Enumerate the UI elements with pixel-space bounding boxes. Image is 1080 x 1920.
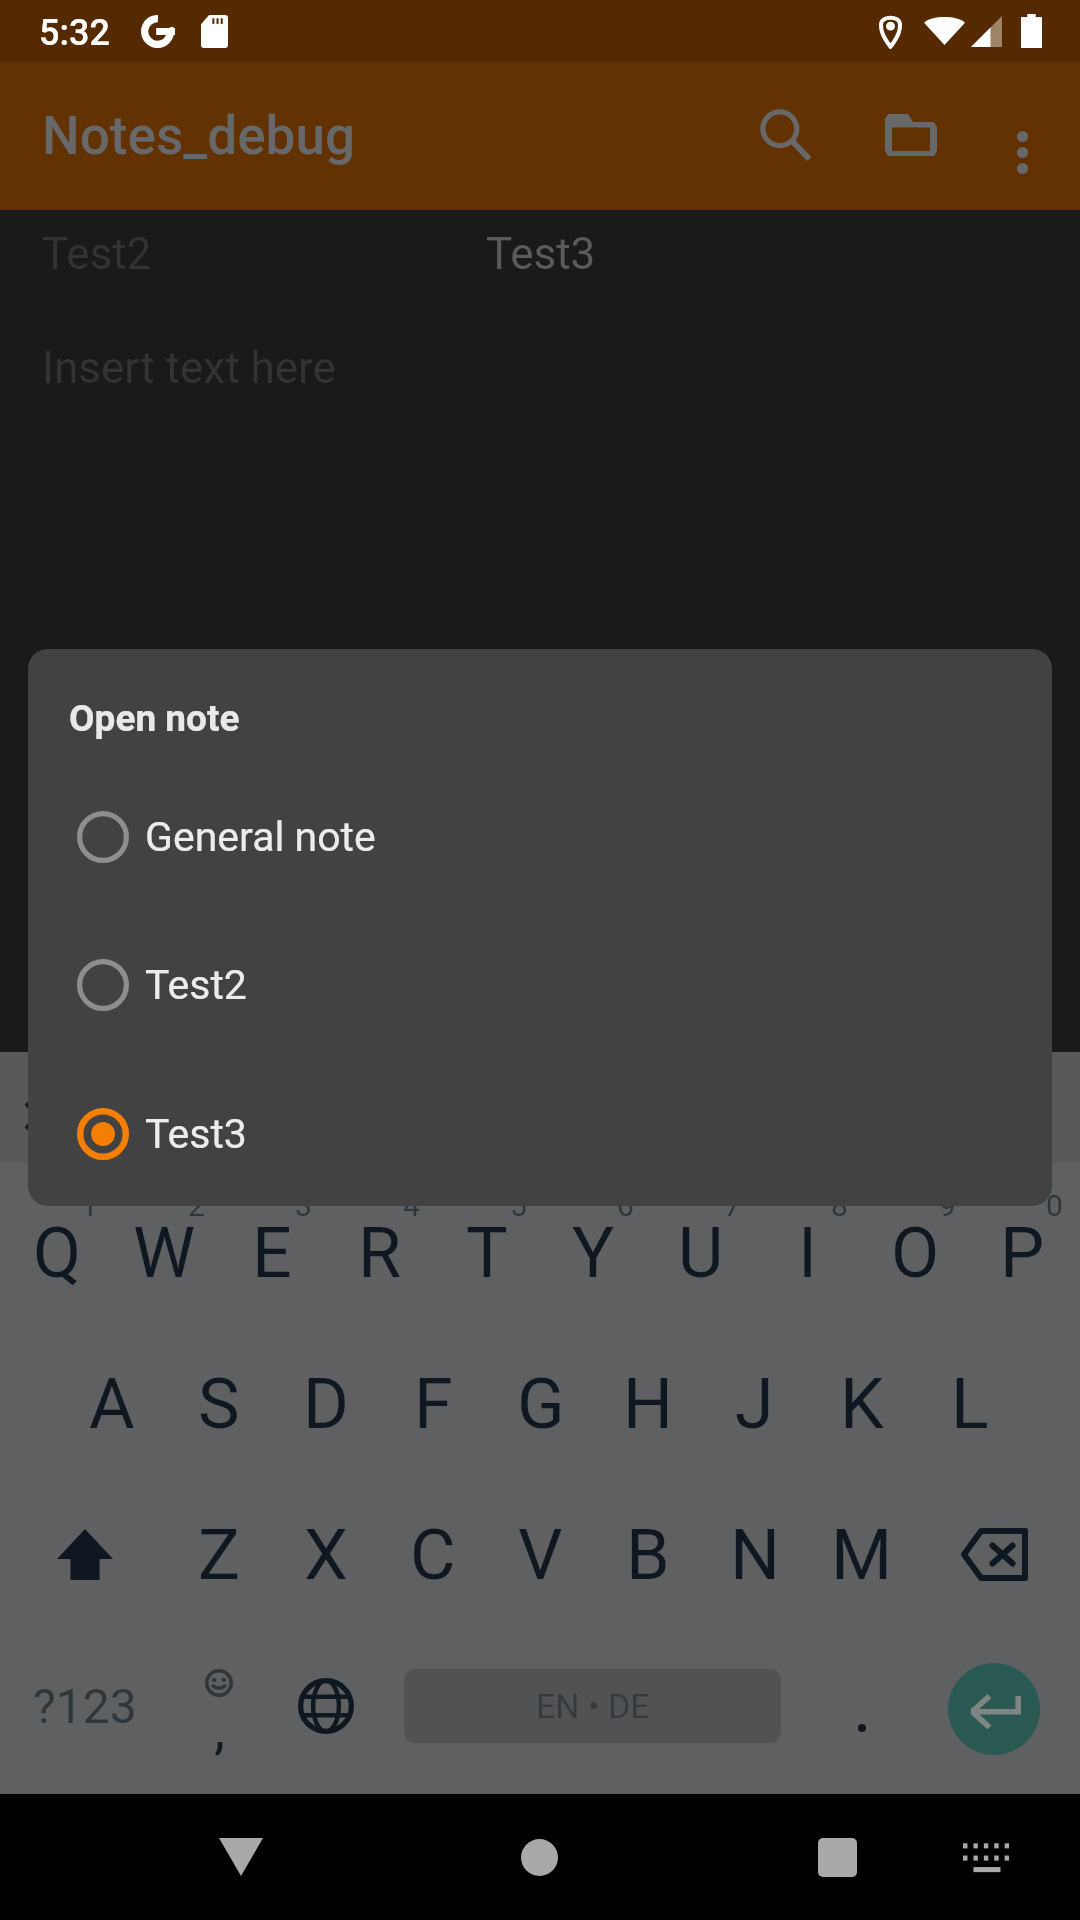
button[interactable]: General note: [28, 763, 1052, 911]
button[interactable]: 0: [969, 1177, 1076, 1328]
button[interactable]: 7: [647, 1177, 754, 1328]
staticText: S: [198, 1363, 240, 1445]
button[interactable]: 4: [326, 1177, 433, 1328]
button[interactable]: [948, 1663, 1040, 1755]
staticText: A: [89, 1363, 135, 1445]
staticText: 5: [510, 1188, 527, 1223]
staticText: 5:32: [39, 12, 110, 54]
button[interactable]: 6: [540, 1177, 647, 1328]
staticText: I: [798, 1212, 818, 1294]
staticText: 8: [831, 1188, 848, 1223]
staticText: X: [304, 1514, 348, 1596]
button[interactable]: More suggestions: [0, 1070, 74, 1162]
button[interactable]: H: [594, 1328, 701, 1479]
staticText: 2: [188, 1188, 205, 1223]
staticText: 4: [403, 1188, 420, 1223]
button[interactable]: L: [916, 1328, 1023, 1479]
button[interactable]: Test3: [28, 1060, 1052, 1206]
staticText: U: [678, 1212, 724, 1294]
staticText: Test3: [145, 1110, 247, 1158]
button[interactable]: K: [808, 1328, 915, 1479]
button[interactable]: Switch keyboard: [918, 1794, 1058, 1920]
button[interactable]: J: [701, 1328, 808, 1479]
staticText: 7: [724, 1188, 741, 1223]
button[interactable]: V: [487, 1479, 594, 1630]
button[interactable]: A: [58, 1328, 165, 1479]
staticText: Notes_debug: [42, 105, 355, 167]
button[interactable]: Test2: [28, 911, 1052, 1059]
button[interactable]: Change language: [272, 1630, 379, 1781]
staticText: General note: [145, 813, 376, 861]
button[interactable]: M: [808, 1479, 915, 1630]
other: Enter: [919, 1633, 1069, 1784]
staticText: E: [252, 1212, 292, 1294]
staticText: 9: [939, 1188, 956, 1223]
staticText: G: [517, 1363, 565, 1445]
staticText: 6: [617, 1188, 634, 1223]
staticText: H: [623, 1363, 673, 1445]
staticText: ,: [214, 1696, 226, 1762]
staticText: K: [840, 1363, 884, 1445]
staticText: EN • DE: [536, 1686, 650, 1726]
staticText: T: [466, 1212, 508, 1294]
button[interactable]: F: [380, 1328, 487, 1479]
button[interactable]: 8: [754, 1177, 861, 1328]
button[interactable]: N: [701, 1479, 808, 1630]
button[interactable]: Shift: [10, 1479, 160, 1630]
staticText: 0: [1046, 1188, 1063, 1223]
button[interactable]: Search: [737, 87, 833, 183]
staticText: Test3: [486, 228, 596, 280]
button[interactable]: 3: [218, 1177, 325, 1328]
button[interactable]: G: [487, 1328, 594, 1479]
button[interactable]: Period: [807, 1630, 914, 1781]
button[interactable]: B: [594, 1479, 701, 1630]
staticText: F: [414, 1363, 453, 1445]
staticText: W: [133, 1212, 196, 1294]
staticText: R: [358, 1212, 402, 1294]
button[interactable]: Home: [469, 1794, 609, 1920]
button[interactable]: X: [272, 1479, 379, 1630]
button[interactable]: More options: [974, 104, 1070, 200]
staticText: Y: [572, 1212, 615, 1294]
button[interactable]: Recent apps: [767, 1794, 907, 1920]
button[interactable]: S: [165, 1328, 272, 1479]
staticText: ?123: [33, 1678, 137, 1734]
staticText: O: [891, 1212, 940, 1294]
staticText: M: [831, 1514, 893, 1596]
staticText: N: [730, 1514, 780, 1596]
staticText: Q: [33, 1212, 82, 1294]
staticText: V: [518, 1514, 563, 1596]
button[interactable]: Back: [171, 1794, 311, 1920]
button[interactable]: 5: [433, 1177, 540, 1328]
staticText: J: [735, 1363, 774, 1445]
staticText: Z: [198, 1514, 240, 1596]
button[interactable]: Emoji: [165, 1630, 272, 1781]
staticText: Insert text here: [42, 342, 336, 394]
button[interactable]: ?123: [10, 1630, 160, 1781]
button[interactable]: D: [272, 1328, 379, 1479]
staticText: B: [626, 1514, 670, 1596]
staticText: Test2: [42, 228, 152, 280]
staticText: 1: [81, 1188, 98, 1223]
button[interactable]: 1: [4, 1177, 111, 1328]
staticText: 3: [295, 1188, 312, 1223]
button[interactable]: Z: [165, 1479, 272, 1630]
button[interactable]: 9: [862, 1177, 969, 1328]
button[interactable]: Backspace: [919, 1479, 1069, 1630]
button[interactable]: 2: [111, 1177, 218, 1328]
button[interactable]: C: [379, 1479, 486, 1630]
button[interactable]: EN • DE: [404, 1669, 781, 1743]
button[interactable]: Folders: [885, 114, 937, 156]
staticText: D: [303, 1363, 349, 1445]
staticText: L: [951, 1363, 989, 1445]
staticText: Test2: [145, 961, 247, 1009]
staticText: P: [1000, 1212, 1045, 1294]
staticText: Open note: [69, 697, 240, 740]
staticText: C: [410, 1514, 456, 1596]
